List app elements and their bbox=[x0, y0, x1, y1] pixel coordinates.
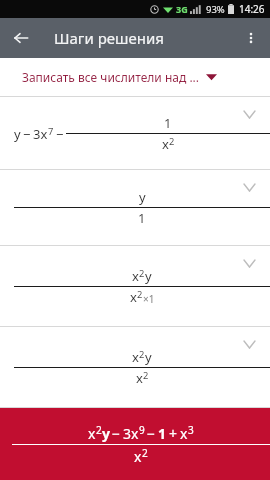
staticText: 7 bbox=[48, 125, 54, 138]
button[interactable]: Back bbox=[6, 23, 36, 53]
staticText: − bbox=[147, 424, 156, 443]
button[interactable]: Записать все числители над ... bbox=[0, 58, 270, 96]
staticText: 2 bbox=[96, 423, 102, 437]
staticText: 1 bbox=[158, 424, 167, 443]
staticText: Записать все числители над ... bbox=[22, 69, 200, 85]
staticText: 93% bbox=[206, 3, 225, 16]
staticText: 2 bbox=[142, 446, 148, 460]
staticText: 2 bbox=[143, 369, 149, 382]
button[interactable]: More options bbox=[236, 23, 266, 53]
staticText: 3x bbox=[123, 424, 139, 443]
staticText: 1 bbox=[138, 209, 146, 227]
staticText: y bbox=[102, 424, 110, 443]
staticText: 2 bbox=[137, 288, 143, 301]
staticText: 14:26 bbox=[239, 2, 265, 16]
button[interactable]: x bbox=[0, 246, 270, 326]
staticText: − bbox=[56, 125, 64, 143]
button[interactable]: y bbox=[0, 97, 270, 169]
staticText: x bbox=[134, 447, 142, 466]
staticText: x bbox=[180, 424, 188, 443]
staticText: x bbox=[130, 288, 137, 306]
button[interactable]: y bbox=[0, 170, 270, 245]
staticText: − bbox=[23, 125, 31, 143]
staticText: 1 bbox=[164, 114, 172, 132]
staticText: x bbox=[132, 267, 139, 285]
staticText: 3G bbox=[176, 3, 188, 15]
staticText: x bbox=[88, 424, 96, 443]
staticText: 2 bbox=[139, 267, 145, 280]
staticText: 3x bbox=[33, 125, 48, 143]
staticText: + bbox=[169, 424, 178, 443]
staticText: y bbox=[139, 188, 146, 206]
staticText: Шаги решения bbox=[54, 28, 164, 48]
staticText: x bbox=[132, 348, 139, 366]
staticText: y bbox=[14, 125, 21, 143]
staticText: y bbox=[145, 267, 152, 285]
staticText: 2 bbox=[169, 135, 175, 148]
staticText: 9 bbox=[139, 423, 145, 437]
staticText: − bbox=[112, 424, 121, 443]
staticText: x bbox=[162, 135, 169, 153]
button[interactable]: x bbox=[0, 408, 270, 480]
button[interactable]: x bbox=[0, 327, 270, 407]
staticText: ×1 bbox=[143, 292, 155, 306]
staticText: 2 bbox=[139, 348, 145, 361]
staticText: 3 bbox=[188, 423, 194, 437]
staticText: y bbox=[145, 348, 152, 366]
staticText: x bbox=[136, 369, 143, 387]
